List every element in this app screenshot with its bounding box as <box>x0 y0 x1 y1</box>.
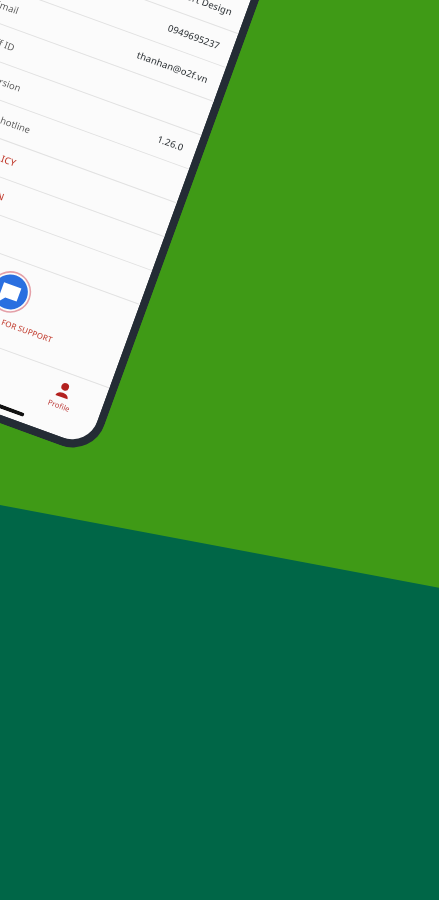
button[interactable]: LOGOUT <box>0 185 152 305</box>
staticText: App version <box>0 64 23 95</box>
button[interactable]: App version <box>0 50 201 170</box>
staticText: PRIVACY POLICY <box>0 132 18 169</box>
staticText: Company hotline <box>0 98 33 137</box>
button[interactable]: Email <box>0 0 226 102</box>
button[interactable]: PRIVACY POLICY <box>0 117 177 237</box>
staticText: 1.26.0 <box>155 132 185 154</box>
button[interactable]: Full name <box>1 0 250 34</box>
button[interactable]: CHANGE MY PIN <box>0 151 164 271</box>
staticText: thanhan@o2f.vn <box>135 48 210 86</box>
staticText: CHANGE MY PIN <box>0 166 6 204</box>
staticText: Support Design <box>163 0 235 19</box>
button[interactable]: Staff ID <box>0 16 214 136</box>
other: Chat support <box>0 266 36 318</box>
button[interactable]: Chat support <box>0 224 138 374</box>
staticText: Profile <box>46 397 71 414</box>
staticText: Staff ID <box>0 30 17 54</box>
staticText: Email <box>0 0 21 17</box>
button[interactable]: Profile <box>15 360 109 432</box>
button[interactable]: Company hotline <box>0 83 189 203</box>
staticText: CHAT WITH US FOR SUPPORT <box>0 296 54 345</box>
staticText: 0949695237 <box>166 21 222 52</box>
button[interactable]: Phone number <box>0 0 238 68</box>
button[interactable]: Reminder <box>0 331 30 403</box>
